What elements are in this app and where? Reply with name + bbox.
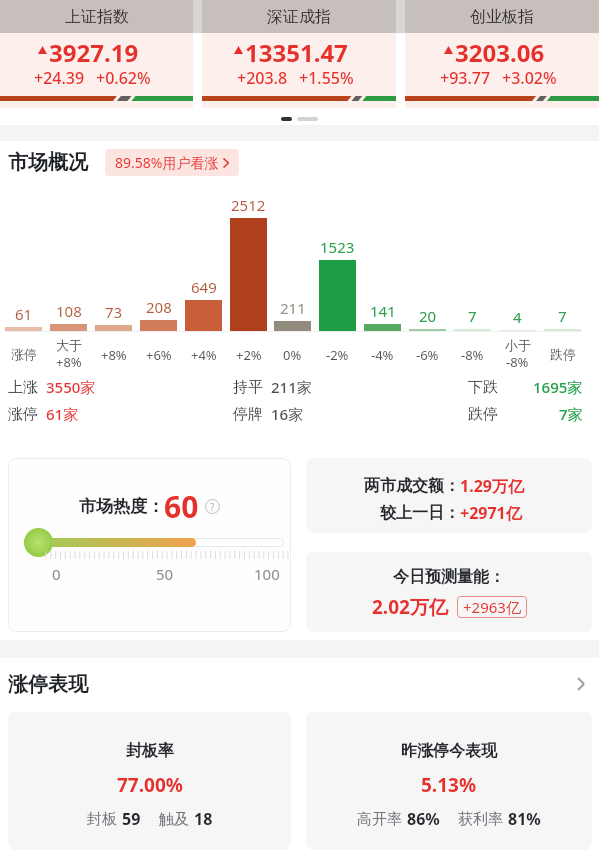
staticText: 50 [156,564,174,584]
staticText: 下跌 [468,378,498,397]
staticText: 3203.06 [455,36,545,64]
staticText: 61 [15,304,33,324]
staticText: 小于 [505,337,531,353]
staticText: 108 [56,301,82,321]
staticText: 77.00% [117,772,183,798]
staticText: 封板 [87,810,117,829]
staticText: 649 [191,277,217,297]
button[interactable]: 89.58%用户看涨 [105,149,239,176]
staticText: 市场热度： [79,496,164,517]
staticText: 市场概况 [8,150,88,175]
button[interactable]: 涨停表现 [0,668,599,700]
button[interactable]: 创业板指 [405,0,599,108]
staticText: -8% [506,353,529,371]
staticText: 13351.47 [245,36,348,64]
staticText: 涨停 [8,405,38,424]
staticText: +93.77 [440,67,491,84]
staticText: 1523 [320,237,355,257]
staticText: +8% [101,346,127,364]
staticText: 持平 [233,378,263,397]
staticText: 86% [407,808,440,830]
staticText: 触及 [159,810,189,829]
staticText: 141 [370,301,396,321]
staticText: +4% [191,346,217,364]
staticText: 7 [468,306,477,326]
staticText: 18 [194,808,213,830]
staticText: 跌停 [550,346,576,362]
button[interactable]: 昨涨停今表现 [306,712,592,850]
staticText: 89.58%用户看涨 [115,153,219,172]
staticText: 100 [254,564,280,584]
staticText: +2% [236,346,262,364]
staticText: 涨停 [11,346,37,362]
staticText: 0% [283,346,302,364]
button[interactable]: 上证指数 [0,0,193,108]
staticText: +2971亿 [460,502,522,524]
staticText: 1695家 [533,377,583,397]
staticText: ? [210,500,215,514]
staticText: +203.8 [237,67,288,84]
staticText: 今日预测量能： [393,567,505,587]
staticText: 两市成交额： [364,476,460,496]
staticText: 208 [146,297,172,317]
staticText: 7 [558,306,567,326]
staticText: +6% [146,346,172,364]
staticText: 高开率 [357,810,402,829]
staticText: 0 [52,564,61,584]
staticText: 上涨 [8,378,38,397]
staticText: 封板率 [126,741,174,761]
staticText: 跌停 [468,405,498,424]
staticText: -6% [416,346,439,364]
button[interactable]: 封板率 [8,712,291,850]
staticText: -4% [371,346,394,364]
staticText: 81% [508,808,541,830]
staticText: 60 [164,486,199,527]
staticText: +8% [56,353,82,371]
staticText: -2% [326,346,349,364]
staticText: +1.55% [299,67,354,84]
staticText: +2963亿 [463,597,521,617]
staticText: 2512 [231,195,266,215]
staticText: +3.02% [502,67,557,84]
staticText: 较上一日： [380,503,460,523]
staticText: +24.39 [34,67,85,84]
staticText: 211家 [271,377,312,397]
staticText: 深证成指 [267,7,331,27]
staticText: 3550家 [46,377,96,397]
staticText: 涨停表现 [8,672,88,697]
staticText: 获利率 [458,810,503,829]
staticText: -8% [461,346,484,364]
staticText: 61家 [46,404,79,424]
button[interactable]: 今日预测量能： [306,552,592,632]
staticText: 上证指数 [65,7,129,27]
staticText: 3927.19 [49,36,139,64]
staticText: 211 [280,298,306,318]
staticText: 59 [122,808,141,830]
staticText: 1.29万亿 [460,475,524,497]
staticText: 停牌 [233,405,263,424]
staticText: 创业板指 [470,7,534,27]
button[interactable]: 深证成指 [202,0,396,108]
staticText: 2.02万亿 [372,594,448,620]
staticText: 4 [513,307,522,327]
staticText: 大于 [56,337,82,353]
staticText: 73 [105,302,123,322]
staticText: +0.62% [96,67,151,84]
staticText: 昨涨停今表现 [401,741,497,761]
staticText: 5.13% [421,772,477,798]
staticText: 20 [419,306,437,326]
button[interactable]: 两市成交额： [306,458,592,533]
staticText: 7家 [559,404,583,424]
button[interactable]: 市场热度： [8,458,291,632]
staticText: 16家 [271,404,304,424]
